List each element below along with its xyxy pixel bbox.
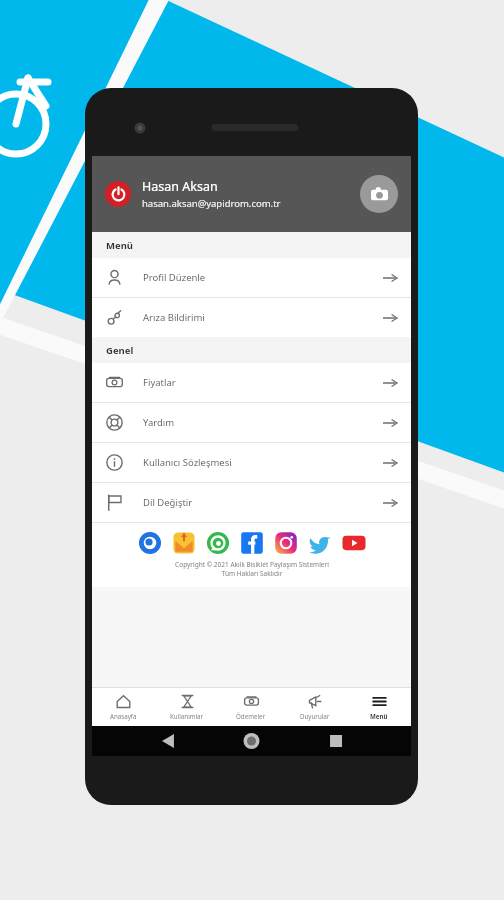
staticText: Arıza Bildirimi	[143, 311, 205, 324]
button[interactable]: Arıza Bildirimi	[92, 298, 411, 337]
staticText: Menü	[106, 239, 133, 252]
button[interactable]: Profil Düzenle	[92, 258, 411, 297]
button[interactable]: Fotoğraf çek	[360, 175, 398, 213]
button[interactable]: WhatsApp	[206, 531, 230, 555]
button[interactable]: Menü	[347, 688, 411, 726]
staticText: Genel	[106, 344, 134, 357]
button[interactable]: Twitter	[308, 531, 332, 555]
button[interactable]: Kullanımlar	[155, 688, 219, 726]
staticText: Profil Düzenle	[143, 271, 206, 284]
button[interactable]: Yardım	[92, 403, 411, 442]
staticText: Copyright © 2021 Akıllı Bisiklet Paylaşı…	[175, 560, 329, 578]
button[interactable]: E-posta	[172, 531, 196, 555]
staticText: Menü	[370, 712, 388, 720]
button[interactable]: Telefon	[138, 531, 162, 555]
staticText: Anasayfa	[110, 712, 137, 720]
button[interactable]: Instagram	[274, 531, 298, 555]
button[interactable]: Duyurular	[283, 688, 347, 726]
staticText: Kullanımlar	[170, 712, 204, 720]
staticText: Yardım	[143, 416, 175, 429]
button[interactable]: YouTube	[342, 531, 366, 555]
staticText: Ödemeler	[236, 712, 266, 720]
staticText: Duyurular	[300, 712, 330, 720]
button[interactable]: Facebook	[240, 531, 264, 555]
staticText: Dil Değiştir	[143, 496, 193, 509]
button[interactable]: Dil Değiştir	[92, 483, 411, 522]
staticText: hasan.aksan@yapidrom.com.tr	[142, 197, 281, 210]
staticText: Kullanıcı Sözleşmesi	[143, 456, 232, 469]
button[interactable]: Ödemeler	[219, 688, 283, 726]
staticText: Fiyatlar	[143, 376, 176, 389]
button[interactable]: Fiyatlar	[92, 363, 411, 402]
button[interactable]: Anasayfa	[92, 688, 155, 726]
button[interactable]: Kullanıcı Sözleşmesi	[92, 443, 411, 482]
button[interactable]: Çıkış	[105, 181, 131, 207]
staticText: Hasan Aksan	[142, 178, 218, 195]
